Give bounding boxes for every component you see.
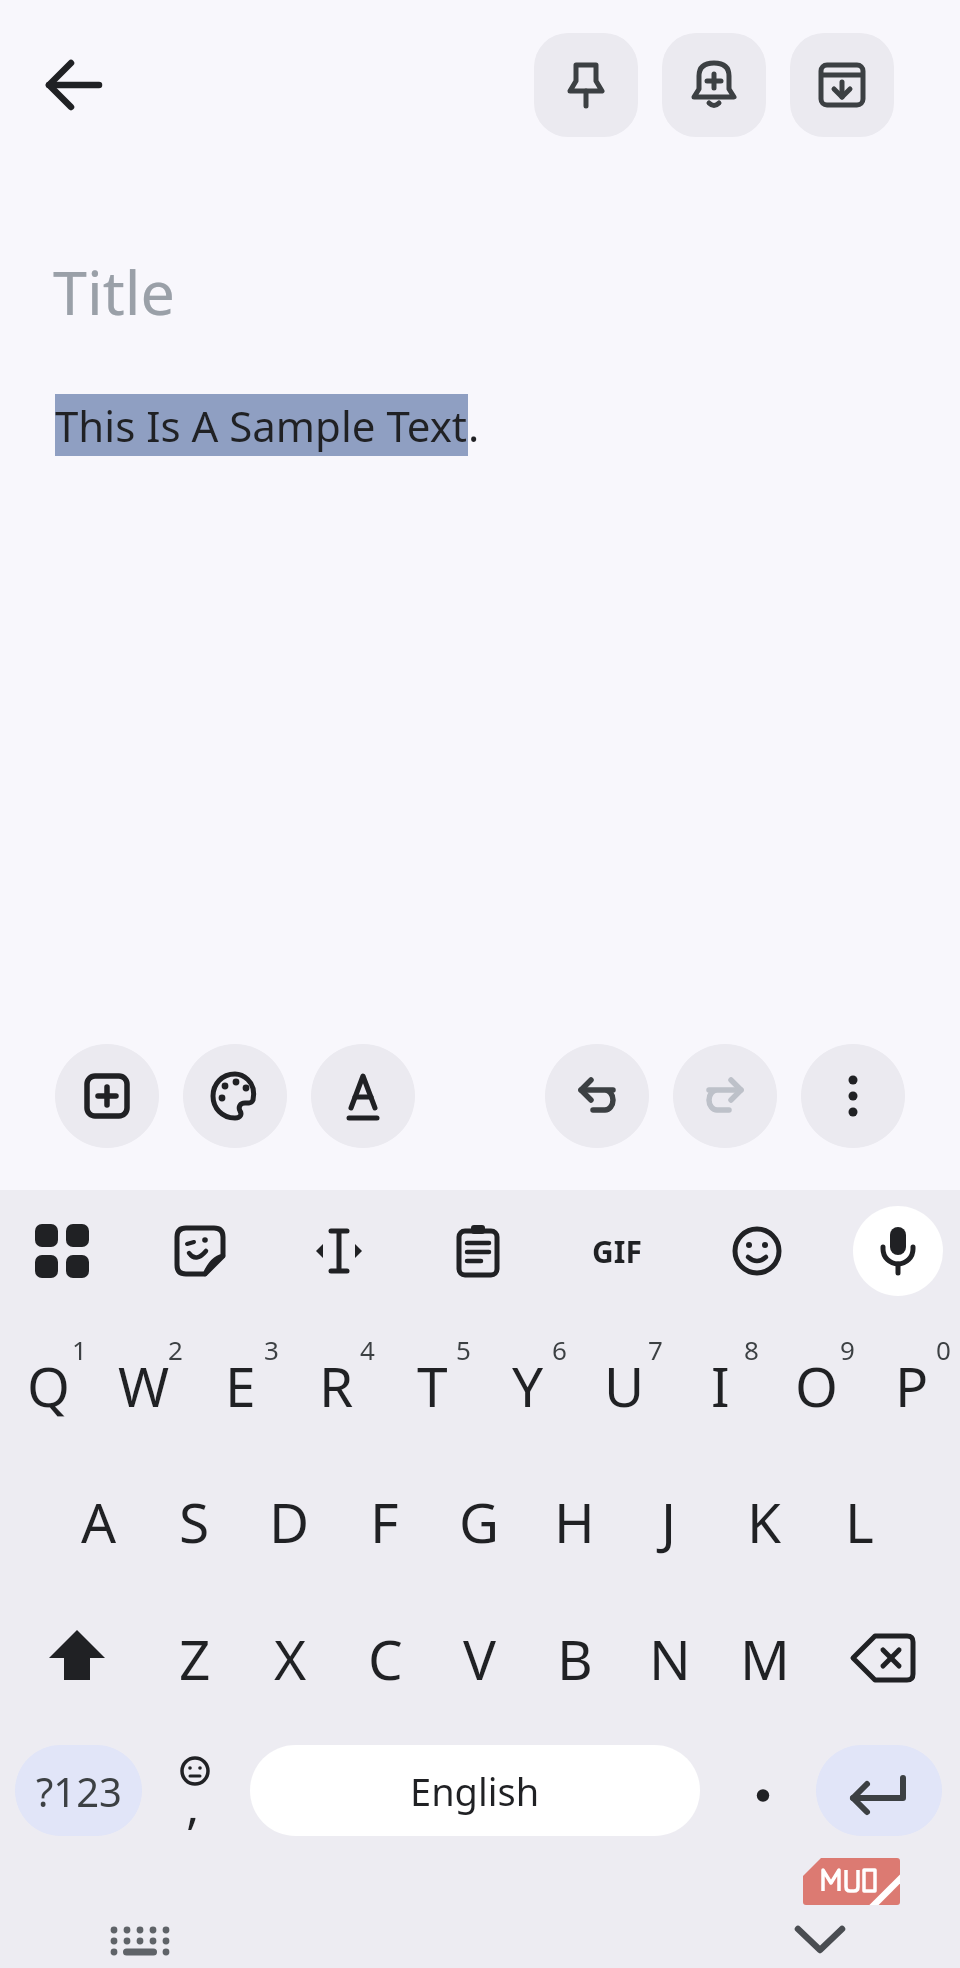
button[interactable]: Z <box>147 1596 243 1720</box>
staticText: H <box>554 1484 595 1559</box>
button[interactable] <box>433 1206 523 1296</box>
staticText: Q <box>27 1348 70 1423</box>
button[interactable] <box>712 1206 802 1296</box>
button[interactable] <box>853 1206 943 1296</box>
button[interactable] <box>572 1206 662 1296</box>
button[interactable] <box>790 33 894 137</box>
button[interactable]: H <box>526 1459 622 1583</box>
staticText: F <box>370 1484 399 1559</box>
staticText: L <box>845 1484 874 1559</box>
button[interactable]: O <box>768 1323 864 1447</box>
staticText: E <box>225 1348 256 1423</box>
button[interactable]: L <box>811 1459 907 1583</box>
button[interactable]: E <box>192 1323 288 1447</box>
staticText: I <box>711 1348 730 1423</box>
button[interactable] <box>17 1206 107 1296</box>
staticText: 8 <box>744 1332 759 1367</box>
staticText: 3 <box>264 1332 279 1367</box>
staticText: M <box>740 1621 790 1696</box>
button[interactable] <box>795 1926 845 1958</box>
staticText: 2 <box>168 1332 183 1367</box>
button[interactable] <box>155 1206 245 1296</box>
button[interactable] <box>311 1044 415 1148</box>
staticText: Z <box>179 1621 211 1696</box>
staticText: S <box>179 1484 210 1559</box>
staticText: U <box>604 1348 645 1423</box>
button[interactable] <box>801 1044 905 1148</box>
staticText: 5 <box>456 1332 471 1367</box>
button[interactable]: G <box>431 1459 527 1583</box>
staticText: W <box>118 1348 170 1423</box>
staticText: G <box>459 1484 500 1559</box>
staticText: 9 <box>840 1332 855 1367</box>
button[interactable] <box>294 1206 384 1296</box>
button[interactable]: F <box>336 1459 432 1583</box>
button[interactable] <box>183 1044 287 1148</box>
staticText: C <box>368 1621 403 1696</box>
button[interactable]: V <box>432 1596 528 1720</box>
button[interactable]: C <box>337 1596 433 1720</box>
staticText: . <box>468 397 480 454</box>
button[interactable]: W <box>96 1323 192 1447</box>
button[interactable]: A <box>51 1459 147 1583</box>
staticText: This Is A Sample Text <box>55 397 468 454</box>
button[interactable] <box>55 1044 159 1148</box>
staticText: N <box>649 1621 691 1696</box>
button[interactable]: T <box>384 1323 480 1447</box>
staticText: P <box>895 1348 929 1423</box>
staticText: D <box>269 1484 310 1559</box>
button[interactable]: D <box>241 1459 337 1583</box>
button[interactable]: J <box>621 1459 717 1583</box>
staticText: Title <box>53 250 175 333</box>
button[interactable]: U <box>576 1323 672 1447</box>
button[interactable] <box>816 1745 942 1836</box>
button[interactable]: English <box>250 1745 700 1836</box>
staticText: T <box>417 1348 448 1423</box>
button[interactable]: M <box>717 1596 813 1720</box>
button[interactable] <box>662 33 766 137</box>
button[interactable] <box>673 1044 777 1148</box>
staticText: English <box>410 1765 540 1817</box>
button[interactable]: S <box>146 1459 242 1583</box>
button[interactable]: Y <box>480 1323 576 1447</box>
staticText: X <box>274 1621 307 1696</box>
button[interactable] <box>545 1044 649 1148</box>
staticText: 7 <box>648 1332 663 1367</box>
staticText: V <box>463 1621 497 1696</box>
button[interactable] <box>833 1610 929 1706</box>
button[interactable]: R <box>288 1323 384 1447</box>
staticText: K <box>747 1484 782 1559</box>
staticText: GIF <box>592 1231 642 1272</box>
button[interactable] <box>725 1745 801 1836</box>
staticText: R <box>319 1348 354 1423</box>
staticText: 4 <box>360 1332 375 1367</box>
staticText: A <box>81 1484 117 1559</box>
staticText: Y <box>512 1348 544 1423</box>
staticText: J <box>661 1484 677 1559</box>
button[interactable]: ?123 <box>15 1745 142 1836</box>
button[interactable]: P <box>864 1323 960 1447</box>
button[interactable]: B <box>527 1596 623 1720</box>
staticText: 6 <box>552 1332 567 1367</box>
staticText: B <box>557 1621 593 1696</box>
staticText: 0 <box>936 1332 951 1367</box>
button[interactable] <box>29 1610 125 1706</box>
staticText: , <box>186 1771 200 1839</box>
button[interactable]: X <box>242 1596 338 1720</box>
staticText: 1 <box>72 1332 87 1367</box>
button[interactable] <box>35 45 115 125</box>
button[interactable]: K <box>716 1459 812 1583</box>
button[interactable]: N <box>622 1596 718 1720</box>
staticText: O <box>795 1348 838 1423</box>
button[interactable] <box>534 33 638 137</box>
button[interactable]: , <box>155 1745 231 1836</box>
button[interactable]: I <box>672 1323 768 1447</box>
button[interactable]: Q <box>0 1323 96 1447</box>
staticText: ?123 <box>36 1764 122 1818</box>
button[interactable] <box>110 1925 172 1957</box>
